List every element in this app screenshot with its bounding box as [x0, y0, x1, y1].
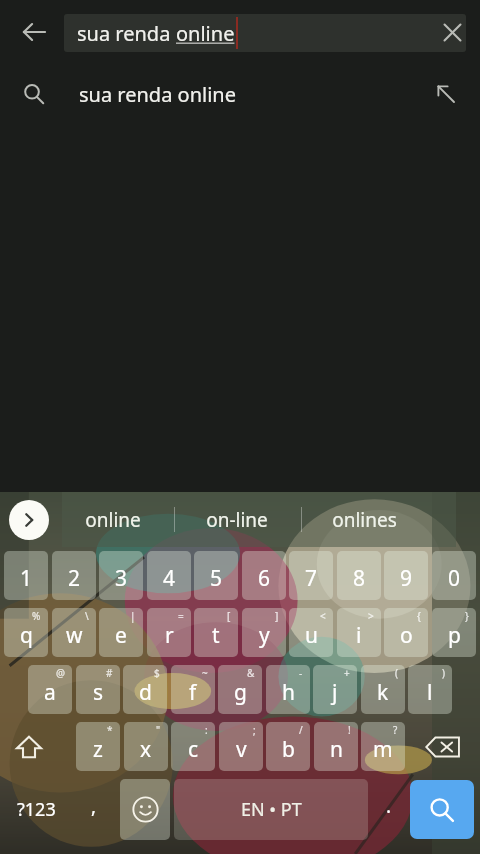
- staticText: z: [93, 735, 103, 764]
- staticText: d: [139, 678, 152, 707]
- staticText: \: [85, 609, 89, 623]
- staticText: r: [165, 621, 174, 650]
- button[interactable]: h: [266, 665, 310, 714]
- staticText: sua renda online: [79, 81, 236, 108]
- staticText: 1: [20, 564, 33, 593]
- button[interactable]: e: [99, 608, 143, 657]
- staticText: 7: [305, 564, 318, 593]
- button[interactable]: p: [432, 608, 476, 657]
- button[interactable]: Backspace: [412, 718, 474, 775]
- staticText: online: [176, 20, 235, 47]
- button[interactable]: Search: [410, 780, 474, 839]
- button[interactable]: ,: [72, 779, 116, 840]
- staticText: j: [332, 678, 338, 707]
- button[interactable]: y: [242, 608, 286, 657]
- staticText: b: [282, 735, 295, 764]
- staticText: e: [115, 621, 127, 650]
- button[interactable]: EN • PT: [174, 779, 368, 840]
- button[interactable]: b: [266, 722, 310, 771]
- button[interactable]: onlines: [304, 492, 424, 547]
- button[interactable]: z: [76, 722, 120, 771]
- button[interactable]: sua renda: [64, 14, 466, 52]
- button[interactable]: Clear: [426, 6, 478, 58]
- button[interactable]: r: [147, 608, 191, 657]
- staticText: 9: [400, 564, 413, 593]
- staticText: m: [373, 735, 393, 764]
- button[interactable]: c: [171, 722, 215, 771]
- button[interactable]: m: [361, 722, 405, 771]
- staticText: *: [107, 723, 113, 737]
- staticText: >: [368, 609, 374, 623]
- staticText: k: [377, 678, 389, 707]
- button[interactable]: 3: [99, 551, 143, 600]
- staticText: c: [188, 735, 199, 764]
- staticText: ?: [393, 723, 398, 737]
- button[interactable]: sua renda online: [0, 64, 480, 124]
- button[interactable]: 1: [4, 551, 48, 600]
- staticText: ~: [202, 666, 208, 680]
- staticText: <: [320, 609, 326, 623]
- button[interactable]: i: [337, 608, 381, 657]
- button[interactable]: x: [124, 722, 168, 771]
- staticText: ): [442, 666, 445, 680]
- button[interactable]: 4: [147, 551, 191, 600]
- staticText: v: [236, 735, 247, 764]
- button[interactable]: Shift: [0, 718, 58, 775]
- staticText: 2: [68, 564, 81, 593]
- staticText: 0: [448, 564, 461, 593]
- button[interactable]: f: [171, 665, 215, 714]
- staticText: #: [106, 666, 113, 680]
- button[interactable]: ?123: [0, 775, 72, 844]
- staticText: p: [448, 621, 461, 650]
- button[interactable]: Back: [6, 4, 62, 60]
- staticText: .: [386, 793, 392, 819]
- button[interactable]: q: [4, 608, 48, 657]
- button[interactable]: s: [76, 665, 120, 714]
- staticText: EN • PT: [241, 797, 302, 822]
- button[interactable]: v: [219, 722, 263, 771]
- button[interactable]: w: [52, 608, 96, 657]
- staticText: q: [20, 621, 33, 650]
- staticText: a: [44, 678, 56, 707]
- staticText: ?123: [17, 797, 56, 822]
- button[interactable]: n: [314, 722, 358, 771]
- button[interactable]: 6: [242, 551, 286, 600]
- staticText: %: [32, 609, 41, 623]
- button[interactable]: 2: [52, 551, 96, 600]
- staticText: @: [56, 666, 65, 680]
- staticText: 8: [353, 564, 366, 593]
- button[interactable]: 5: [194, 551, 238, 600]
- button[interactable]: a: [28, 665, 72, 714]
- button[interactable]: .: [370, 779, 408, 840]
- button[interactable]: o: [384, 608, 428, 657]
- button[interactable]: on-line: [177, 492, 297, 547]
- staticText: s: [93, 678, 104, 707]
- staticText: =: [178, 609, 184, 623]
- staticText: h: [282, 678, 295, 707]
- staticText: t: [212, 621, 220, 650]
- button[interactable]: 9: [384, 551, 428, 600]
- button[interactable]: k: [361, 665, 405, 714]
- button[interactable]: 0: [432, 551, 476, 600]
- button[interactable]: online: [53, 492, 173, 547]
- staticText: !: [348, 723, 351, 737]
- button[interactable]: t: [194, 608, 238, 657]
- button[interactable]: 7: [289, 551, 333, 600]
- button[interactable]: j: [313, 665, 357, 714]
- staticText: g: [234, 678, 247, 707]
- button[interactable]: d: [123, 665, 167, 714]
- button[interactable]: 8: [337, 551, 381, 600]
- staticText: sua renda: [77, 20, 176, 47]
- button[interactable]: Emoji: [120, 779, 170, 840]
- staticText: x: [140, 735, 152, 764]
- button[interactable]: l: [408, 665, 452, 714]
- staticText: /: [299, 723, 303, 737]
- staticText: 3: [115, 564, 128, 593]
- button[interactable]: Insert suggestion: [424, 72, 468, 116]
- staticText: f: [189, 678, 197, 707]
- button[interactable]: More suggestions: [9, 500, 49, 540]
- staticText: -: [299, 666, 303, 680]
- button[interactable]: g: [218, 665, 262, 714]
- button[interactable]: u: [289, 608, 333, 657]
- staticText: onlines: [332, 507, 397, 533]
